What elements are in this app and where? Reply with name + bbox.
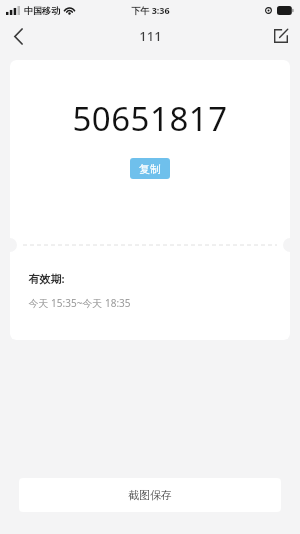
staticText: 50651817 [72, 96, 228, 141]
staticText: 复制 [139, 162, 161, 176]
button[interactable]: 复制 [130, 158, 170, 179]
staticText: 中国移动 [24, 5, 60, 16]
button[interactable]: Back [0, 20, 36, 52]
staticText: 下午 3:36 [131, 4, 170, 16]
staticText: 截图保存 [128, 488, 172, 502]
staticText: 111 [139, 27, 162, 45]
staticText: 有效期: [28, 271, 65, 286]
staticText: 今天 15:35~今天 18:35 [28, 296, 131, 310]
button[interactable]: 截图保存 [19, 478, 281, 512]
button[interactable]: Compose [262, 20, 300, 52]
